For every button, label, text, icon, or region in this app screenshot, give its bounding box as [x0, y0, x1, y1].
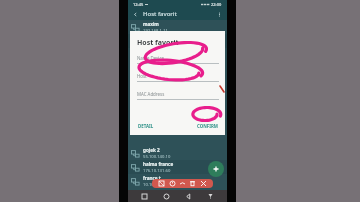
staticText: 192.168.1.11 — [143, 28, 168, 34]
staticText: 12:45 — [133, 2, 144, 7]
staticText: Name Device — [137, 55, 165, 61]
button[interactable]: Back — [183, 191, 194, 202]
button[interactable]: Add — [208, 161, 224, 177]
button[interactable]: Assistant — [205, 191, 216, 202]
button[interactable]: halma france — [128, 160, 227, 174]
button[interactable]: maxim — [128, 20, 227, 34]
staticText: Host favorit — [137, 38, 179, 48]
button[interactable]: Action 0 — [158, 180, 165, 187]
button[interactable]: Action 4 — [200, 180, 207, 187]
staticText: 192.168.1.12 — [143, 42, 168, 48]
staticText: shipper 2 — [143, 35, 165, 41]
staticText: france t. — [143, 175, 163, 181]
staticText: Host — [137, 73, 147, 79]
staticText: DETAIL — [138, 123, 154, 129]
button[interactable]: france t. — [128, 174, 227, 188]
button[interactable]: More options — [215, 10, 224, 19]
staticText: 22:00 — [211, 2, 222, 7]
staticText: maxim — [143, 21, 159, 27]
button[interactable]: shipper 2 — [128, 34, 227, 48]
staticText: gojek 2 — [143, 147, 160, 153]
button[interactable]: Navigate up — [131, 10, 140, 19]
staticText: 55.100.140.10 — [143, 154, 171, 160]
staticText: 176.10.131.60 — [143, 168, 171, 174]
button[interactable]: Home — [161, 191, 172, 202]
staticText: halma france — [143, 161, 174, 167]
button[interactable]: Recents — [139, 191, 150, 202]
staticText: CONFIRM — [197, 123, 218, 129]
staticText: MAC Address — [137, 91, 165, 97]
button[interactable]: gojek 2 — [128, 146, 227, 160]
button[interactable]: CONFIRM — [196, 122, 219, 130]
button[interactable]: DETAIL — [137, 122, 155, 130]
button[interactable]: Action 2 — [179, 180, 186, 187]
staticText: 10.10.10.10 — [143, 182, 166, 188]
staticText: Host favorit — [143, 10, 177, 18]
button[interactable]: Action 1 — [169, 180, 176, 187]
button[interactable]: Action 3 — [189, 180, 196, 187]
